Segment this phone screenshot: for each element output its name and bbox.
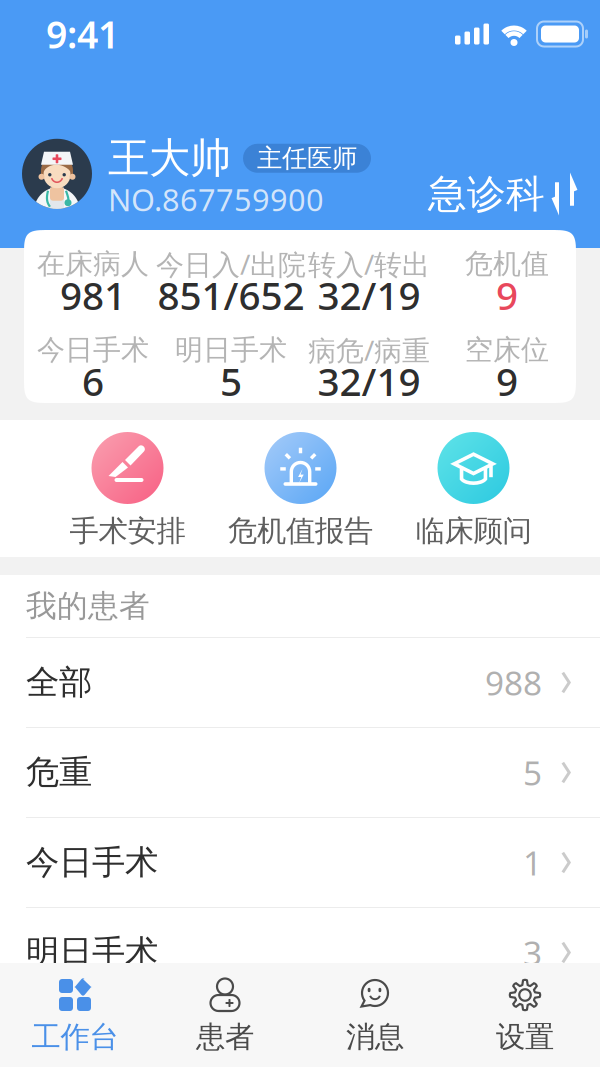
staticText: 6 xyxy=(82,355,104,407)
staticText: 病危/病重 xyxy=(308,331,430,369)
staticText: 临床顾问 xyxy=(415,513,531,549)
button[interactable]: 消息 xyxy=(300,963,450,1067)
staticText: 设置 xyxy=(496,1019,554,1055)
staticText: 9 xyxy=(496,269,518,321)
button[interactable]: 危重 xyxy=(0,728,600,817)
staticText: 空床位 xyxy=(465,333,549,367)
staticText: 今日入/出院 xyxy=(156,245,306,283)
staticText: 明日手术 xyxy=(175,333,287,367)
staticText: 32/19 xyxy=(317,355,420,407)
staticText: 今日手术 xyxy=(37,333,149,367)
button[interactable]: 明日手术 xyxy=(0,908,600,997)
button[interactable]: 今日手术 xyxy=(0,818,600,907)
staticText: 工作台 xyxy=(31,1019,118,1055)
button[interactable]: 全部 xyxy=(0,638,600,727)
staticText: 主任医师 xyxy=(257,143,357,174)
staticText: 5 xyxy=(220,355,242,407)
staticText: 急诊科 xyxy=(428,170,545,218)
staticText: 危重 xyxy=(26,752,92,793)
staticText: 我的患者 xyxy=(26,587,150,625)
staticText: 3 xyxy=(523,930,542,975)
button[interactable]: 手术安排 xyxy=(41,420,214,557)
staticText: 危机值 xyxy=(465,247,549,281)
button[interactable]: 危机值报告 xyxy=(214,420,387,557)
button[interactable]: 急诊科 xyxy=(428,140,578,218)
staticText: 851/652 xyxy=(157,269,304,321)
staticText: 988 xyxy=(485,660,542,705)
staticText: 全部 xyxy=(26,662,92,703)
staticText: 981 xyxy=(60,269,126,321)
button[interactable]: 患者 xyxy=(150,963,300,1067)
button[interactable]: 临床顾问 xyxy=(387,420,560,557)
staticText: 手术安排 xyxy=(69,513,185,549)
staticText: 在床病人 xyxy=(37,247,149,281)
staticText: 王大帅 xyxy=(108,133,231,184)
staticText: 32/19 xyxy=(317,269,420,321)
button[interactable]: 工作台 xyxy=(0,963,150,1067)
staticText: 9 xyxy=(496,355,518,407)
staticText: 1 xyxy=(523,840,542,885)
staticText: 明日手术 xyxy=(26,932,158,973)
staticText: 9:41 xyxy=(46,9,119,59)
staticText: 今日手术 xyxy=(26,842,158,883)
staticText: 患者 xyxy=(196,1019,254,1055)
button[interactable]: 设置 xyxy=(450,963,600,1067)
staticText: 消息 xyxy=(346,1019,404,1055)
staticText: 转入/转出 xyxy=(308,245,430,283)
staticText: NO.867759900 xyxy=(108,179,324,220)
staticText: 5 xyxy=(523,750,542,795)
staticText: 危机值报告 xyxy=(228,513,373,549)
